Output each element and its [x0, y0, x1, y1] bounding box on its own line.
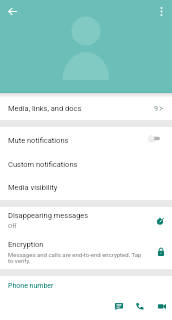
staticText: Media visibility	[8, 183, 58, 192]
button[interactable]: Media, links, and docs	[0, 97, 172, 120]
button[interactable]: Encryption	[0, 236, 172, 269]
button[interactable]: Message	[111, 298, 127, 314]
button[interactable]: Back	[2, 1, 23, 22]
staticText: 9	[154, 105, 158, 113]
staticText: Phone number	[8, 282, 54, 290]
button[interactable]: Custom notifications	[0, 152, 172, 176]
button[interactable]: Phone number	[0, 276, 172, 320]
button[interactable]: Mute notifications	[0, 128, 172, 152]
staticText: Messages and calls are end-to-end encryp…	[8, 251, 146, 264]
staticText: Custom notifications	[8, 160, 78, 169]
button[interactable]: Media visibility	[0, 175, 172, 200]
button[interactable]: Video call	[154, 298, 170, 314]
staticText: Encryption	[8, 240, 44, 249]
staticText: Disappearing messages	[8, 211, 89, 220]
button[interactable]: Disappearing messages	[0, 207, 172, 233]
staticText: Mute notifications	[8, 136, 69, 145]
staticText: Off	[8, 222, 17, 229]
button[interactable]: More options	[151, 1, 172, 22]
button[interactable]: Call	[132, 298, 148, 314]
staticText: Media, links, and docs	[8, 104, 82, 113]
